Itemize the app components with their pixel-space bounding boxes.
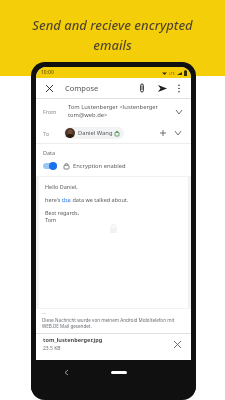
staticText: tom_lustenberger.jpg — [43, 336, 103, 344]
button[interactable]: tom_lustenberger.jpg — [36, 334, 191, 354]
button[interactable]: To — [36, 123, 191, 143]
staticText: Hello Daniel, — [45, 183, 78, 190]
staticText: emails — [93, 36, 132, 54]
staticText: data we talked about. — [71, 196, 129, 203]
staticText: Diese Nachricht wurde von meinem Android… — [42, 317, 175, 323]
button[interactable]: Daniel Wang — [65, 128, 119, 138]
other: Expand from — [173, 106, 184, 117]
staticText: Tom — [45, 216, 57, 223]
staticText: To — [43, 130, 50, 137]
button[interactable]: Compose — [65, 83, 99, 93]
staticText: 10:00 — [41, 69, 54, 76]
button[interactable]: More options — [173, 82, 185, 94]
button[interactable]: From — [36, 99, 191, 123]
staticText: Tom Lustenberger <lustenberger — [68, 103, 159, 111]
button[interactable]: Add recipient — [157, 127, 169, 139]
button[interactable]: Home — [111, 371, 127, 374]
button[interactable]: Close — [42, 81, 56, 95]
staticText: Best regards, — [45, 209, 80, 216]
staticText: Encryption enabled — [73, 162, 126, 170]
button[interactable]: Send — [155, 81, 169, 95]
staticText: From — [43, 108, 57, 115]
button[interactable]: Encryption enabled — [43, 162, 184, 170]
button[interactable]: Attach file — [135, 81, 149, 95]
button[interactable]: Hello Daniel, — [39, 177, 188, 308]
button[interactable]: Back — [60, 366, 72, 378]
staticText: Daniel Wang — [78, 129, 113, 137]
staticText: WEB.DE Mail gesendet. — [42, 323, 92, 329]
staticText: Data — [43, 149, 56, 156]
button[interactable]: Remove attachment — [171, 338, 184, 351]
staticText: tom@web.de> — [68, 111, 108, 119]
staticText: Send and recieve encrypted — [32, 16, 193, 34]
staticText: the — [62, 196, 71, 203]
button[interactable]: Show Cc Bcc — [172, 127, 184, 139]
staticText: here's — [45, 196, 62, 203]
staticText: 23.5 KB — [43, 345, 61, 352]
staticText: LTE — [169, 71, 175, 76]
